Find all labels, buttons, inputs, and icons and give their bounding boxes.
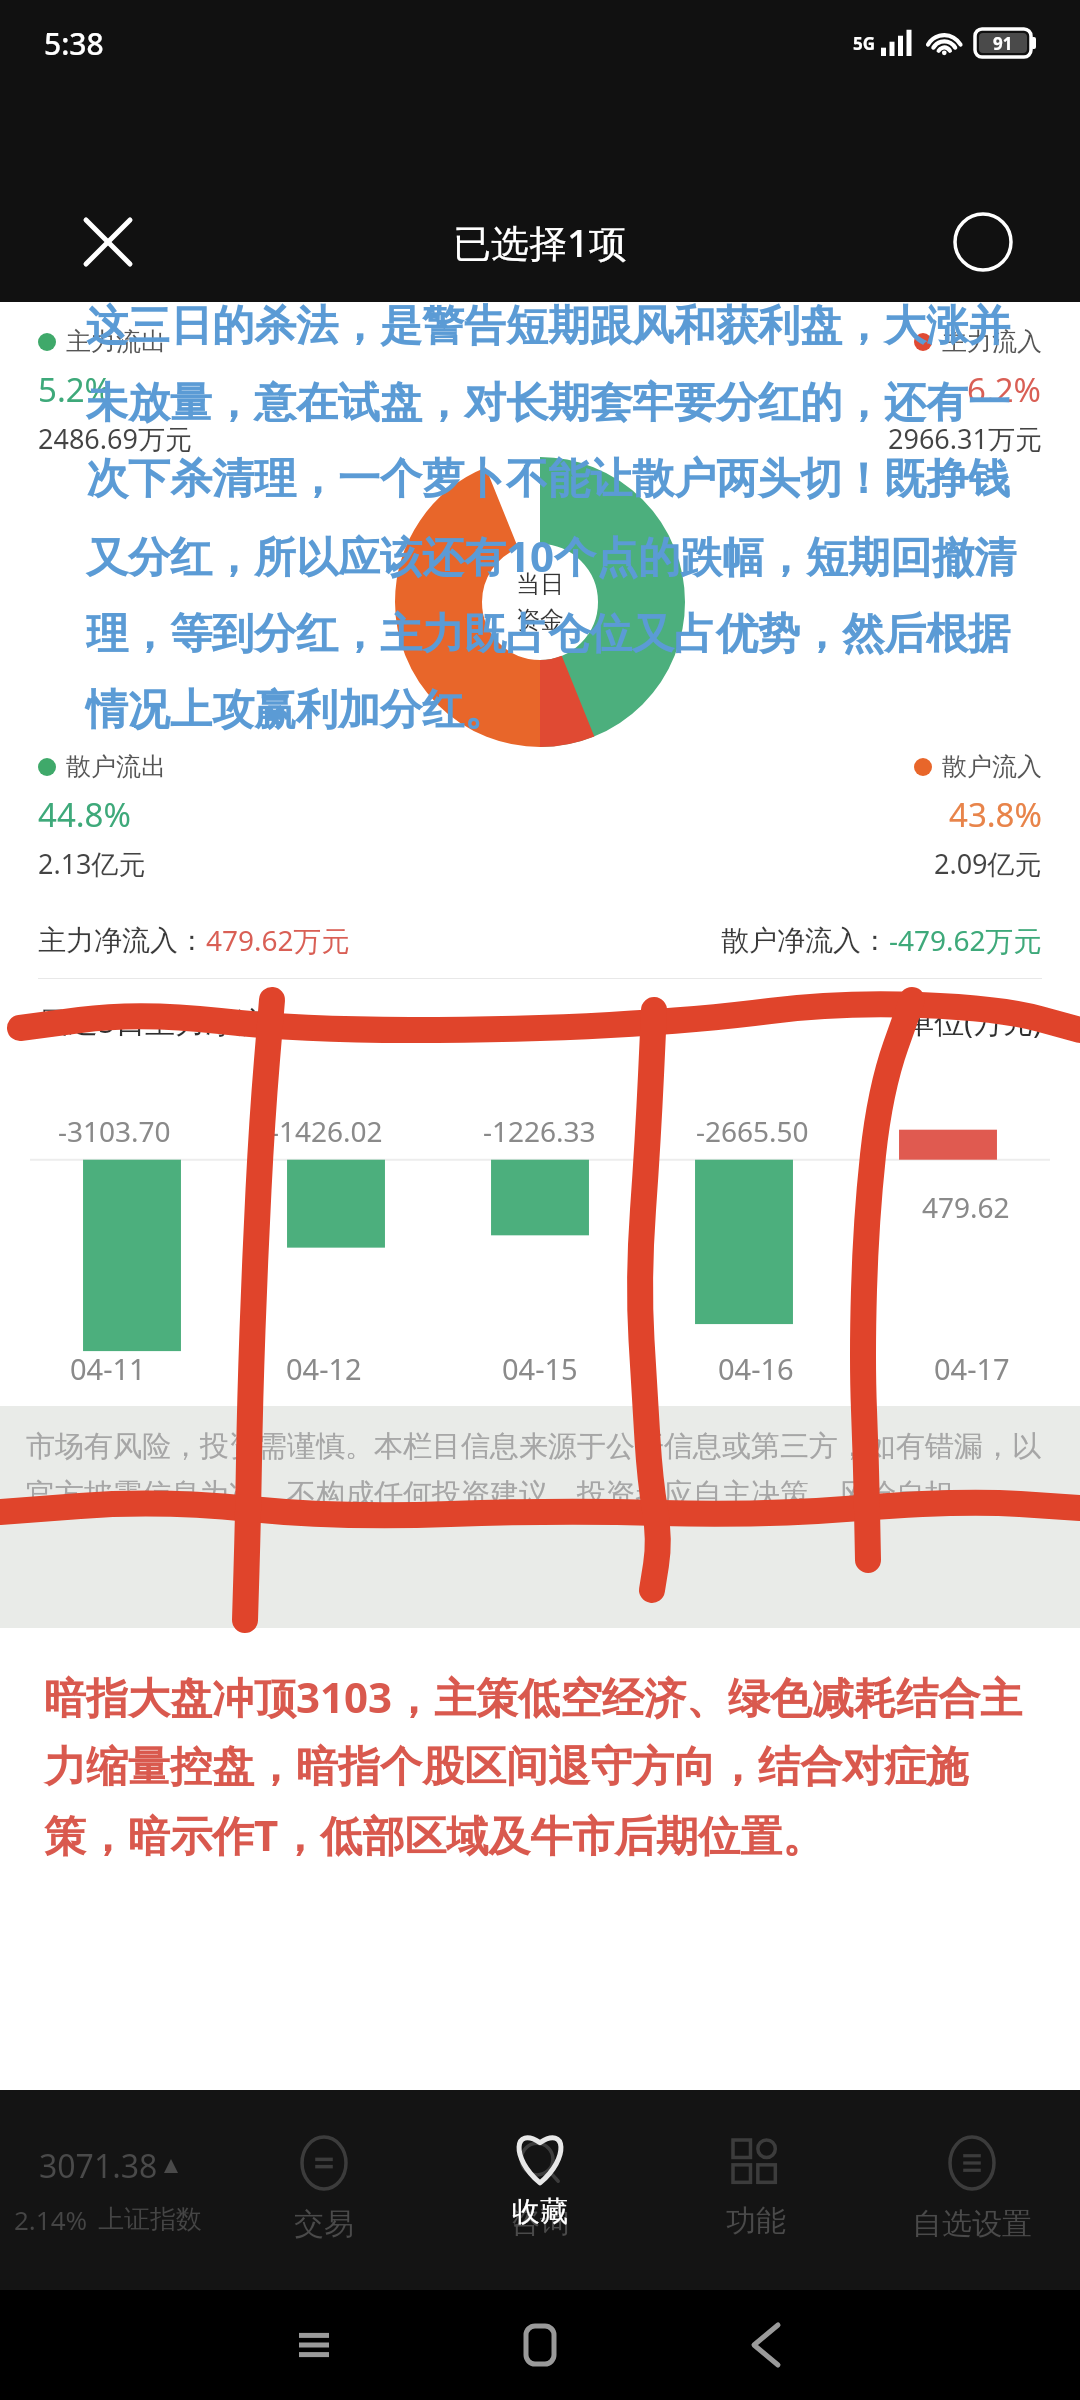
staticText: 最近5日主力净流入 <box>38 1001 296 1042</box>
staticText: 5G <box>853 32 876 55</box>
staticText: 5:38 <box>44 23 104 64</box>
staticText: -3103.70 <box>58 1112 171 1150</box>
button[interactable]: 收藏 <box>509 2124 571 2229</box>
staticText: 散户流入 <box>942 751 1042 782</box>
staticText: 收藏 <box>512 2194 568 2229</box>
staticText: 暗指大盘冲顶3103，主策低空经济、绿色减耗结合主力缩量控盘，暗指个股区间退守方… <box>44 1668 1036 1864</box>
button[interactable]: 咨询 <box>432 2139 648 2241</box>
staticText: 散户净流入： <box>721 923 889 958</box>
button[interactable]: Home <box>494 2299 586 2391</box>
staticText: 04-15 <box>502 1349 578 1388</box>
staticText: 市场有风险，投资需谨慎。本栏目信息来源于公开信息或第三方，如有错漏，以官方披露信… <box>26 1428 1054 1512</box>
staticText: -479.62万元 <box>889 921 1042 959</box>
staticText: -1226.33 <box>483 1112 596 1150</box>
staticText: 04-17 <box>934 1349 1010 1388</box>
staticText: 散户流出 <box>66 751 166 782</box>
staticText: 91 <box>993 32 1013 55</box>
staticText: 04-16 <box>718 1349 794 1388</box>
staticText: 主力流出 <box>66 326 166 357</box>
staticText: 咨询 <box>510 2203 570 2241</box>
staticText: 5.2% <box>38 367 113 412</box>
staticText: 主力净流入： <box>38 923 206 958</box>
staticText: 2.13亿元 <box>38 845 146 882</box>
staticText: 功能 <box>726 2202 786 2240</box>
staticText: 资金 <box>516 605 564 635</box>
button[interactable]: Select <box>944 203 1022 281</box>
staticText: 交易 <box>294 2205 354 2243</box>
button[interactable]: Recents <box>268 2299 360 2391</box>
staticText: 这三日的杀法，是警告短期跟风和获利盘，大涨并未放量，意在试盘，对长期套牢要分红的… <box>86 300 1040 736</box>
staticText: 43.8% <box>949 792 1042 837</box>
staticText: 2.09亿元 <box>934 845 1042 882</box>
staticText: 2.14% <box>14 2202 88 2237</box>
other: 收藏 <box>509 2124 571 2186</box>
staticText: 479.62万元 <box>206 921 350 959</box>
staticText: 44.8% <box>38 792 131 837</box>
button[interactable]: Back <box>720 2299 812 2391</box>
staticText: 主力流入 <box>942 326 1042 357</box>
staticText: 6.2% <box>967 367 1042 412</box>
button[interactable]: 自选设置 <box>864 2137 1080 2243</box>
button[interactable]: 交易 <box>216 2137 432 2243</box>
staticText: 2486.69万元 <box>38 420 192 457</box>
staticText: 04-11 <box>70 1349 146 1388</box>
staticText: 3071.38 <box>39 2144 158 2188</box>
staticText: 479.62 <box>922 1188 1010 1226</box>
staticText: 自选设置 <box>912 2205 1032 2243</box>
staticText: 2966.31万元 <box>888 420 1042 457</box>
staticText: 单位(万元) <box>904 1001 1042 1042</box>
staticText: 上证指数 <box>98 2203 202 2236</box>
staticText: 04-12 <box>286 1349 362 1388</box>
button[interactable]: 3071.38 <box>0 2144 216 2237</box>
staticText: 已选择1项 <box>453 216 627 268</box>
staticText: -2665.50 <box>696 1112 809 1150</box>
staticText: 当日 <box>516 569 564 599</box>
button[interactable]: 功能 <box>648 2140 864 2240</box>
button[interactable]: Close <box>72 206 144 278</box>
staticText: -1426.02 <box>270 1112 383 1150</box>
